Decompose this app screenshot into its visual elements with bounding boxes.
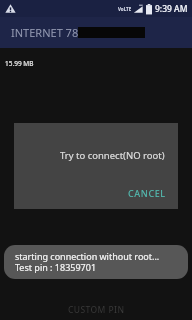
staticText: 9:39 AM xyxy=(155,3,188,15)
staticText: CUSTOM PIN xyxy=(68,304,125,316)
staticText: VoLTE xyxy=(118,6,132,12)
button[interactable]: CANCEL xyxy=(122,183,172,203)
button[interactable]: CONNECT AUTOMATIC PIN xyxy=(0,258,192,282)
staticText: INTERNET 78 xyxy=(11,25,79,40)
staticText: 15.99 MB xyxy=(5,59,34,68)
other: Warning xyxy=(5,3,16,14)
staticText: CONNECT AUTOMATIC PIN xyxy=(38,264,155,276)
button[interactable]: CUSTOM PIN xyxy=(0,298,192,320)
staticText: starting connection without root... Test… xyxy=(15,250,178,274)
staticText: CANCEL xyxy=(128,187,166,199)
staticText: Try to connect(NO root) xyxy=(60,149,165,162)
